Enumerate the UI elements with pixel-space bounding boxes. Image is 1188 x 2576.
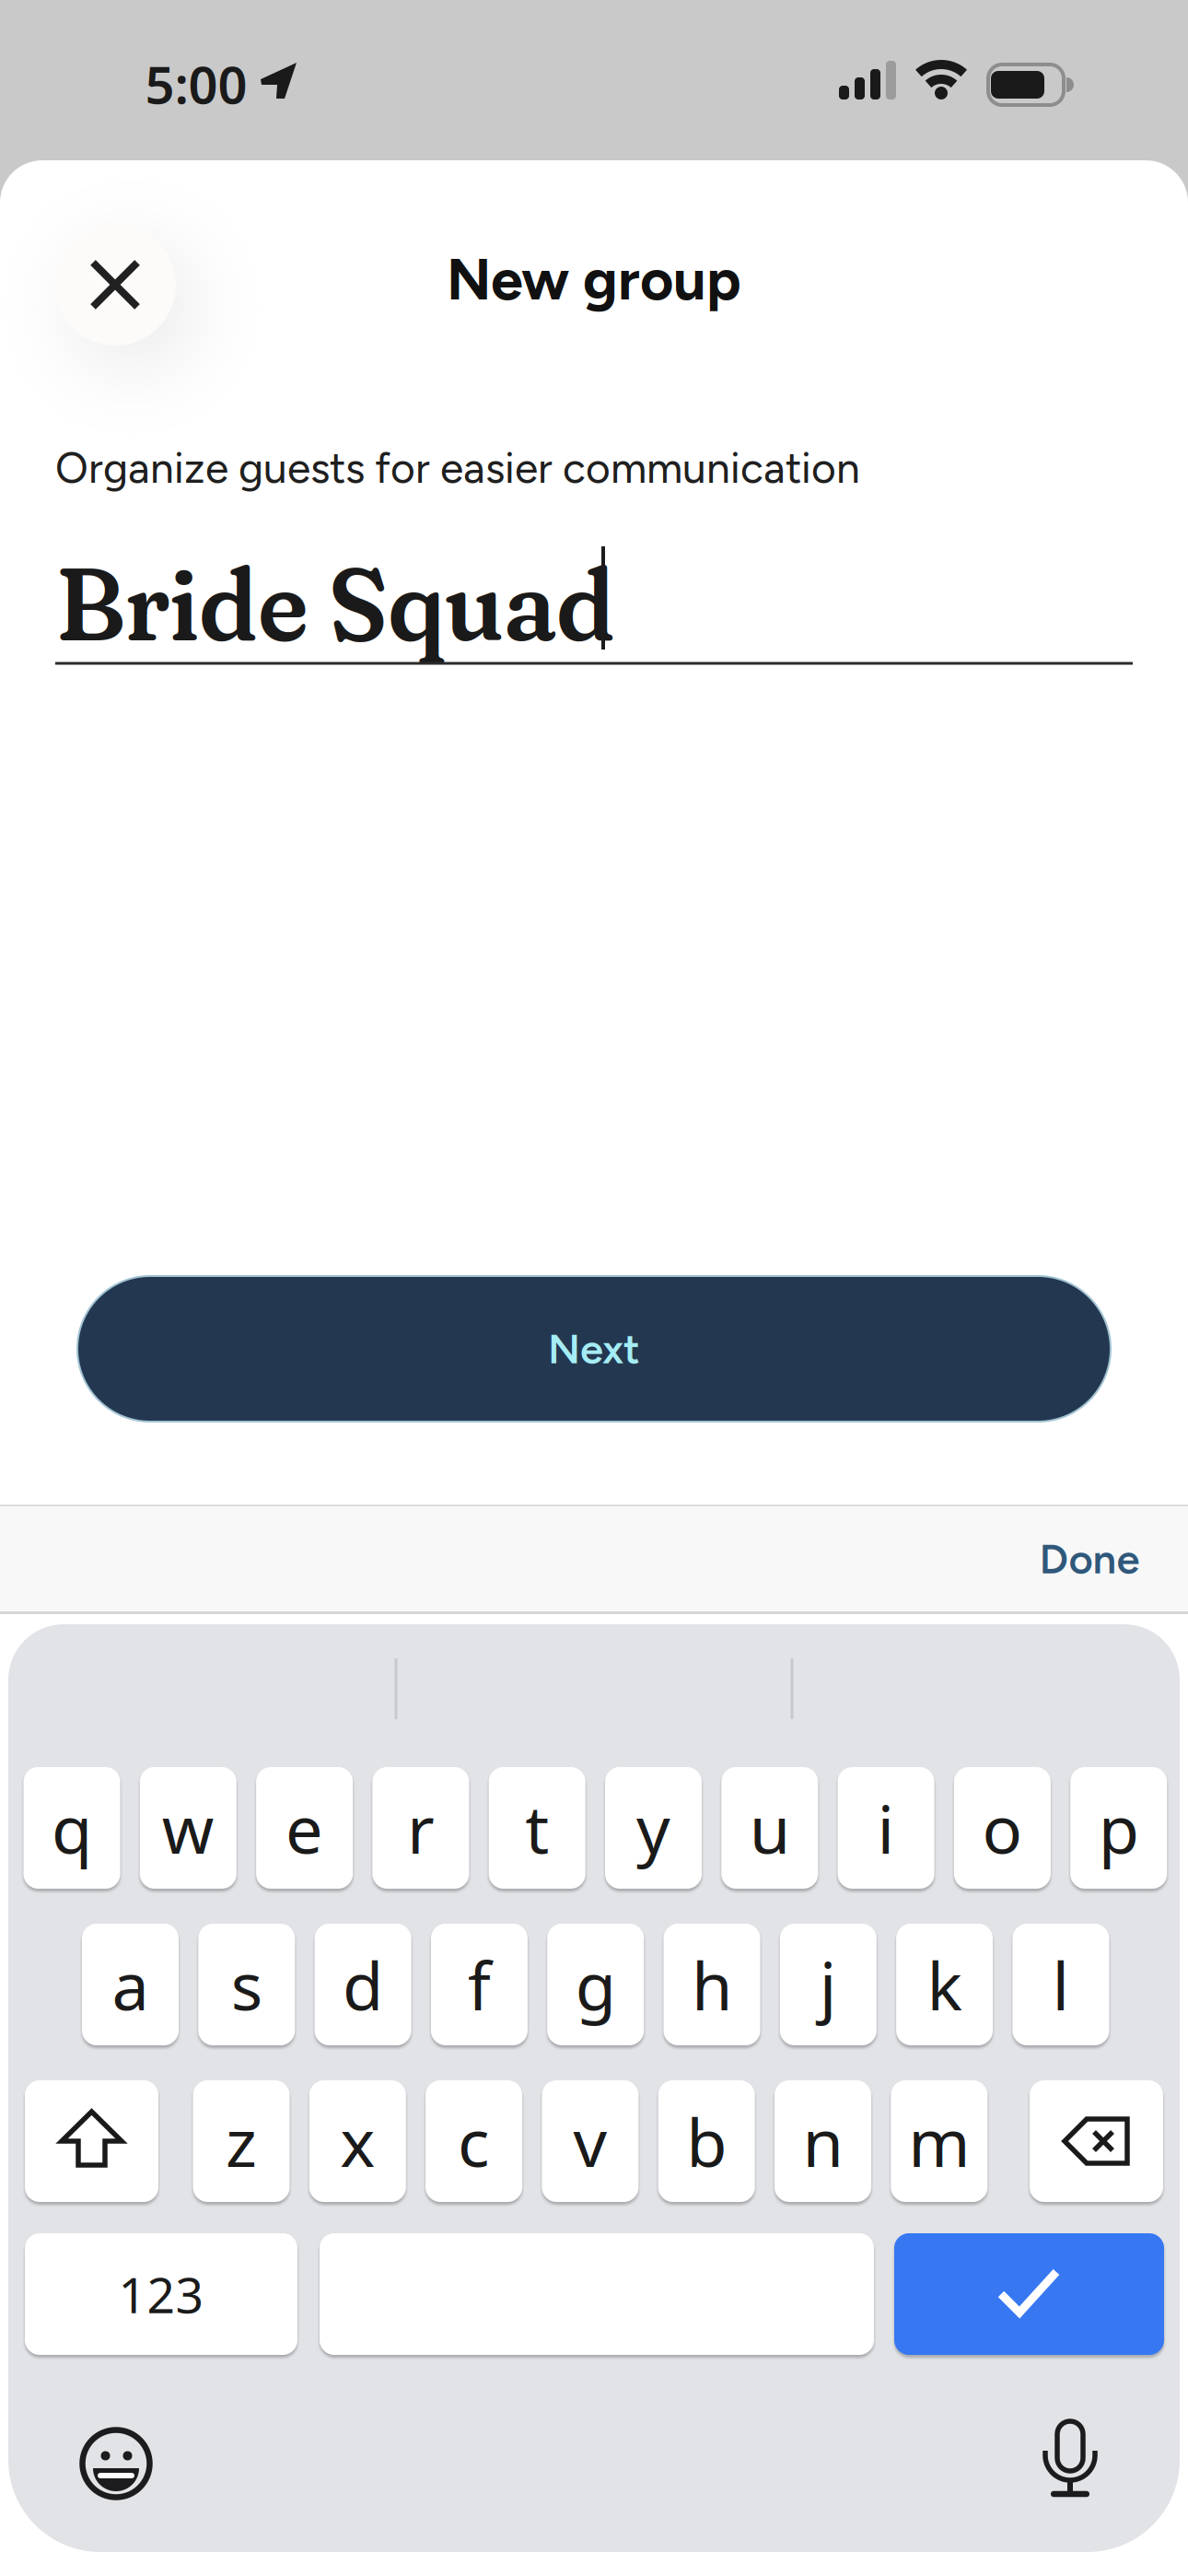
button[interactable]: [320, 2233, 874, 2355]
staticText: y: [636, 1784, 670, 1872]
button[interactable]: o: [954, 1767, 1051, 1889]
button[interactable]: [54, 224, 176, 345]
staticText: Done: [1039, 1534, 1140, 1584]
button[interactable]: y: [605, 1767, 702, 1889]
button[interactable]: j: [780, 1924, 877, 2045]
staticText: s: [231, 1940, 262, 2029]
button[interactable]: n: [775, 2080, 871, 2202]
button[interactable]: u: [721, 1767, 818, 1889]
staticText: r: [407, 1784, 435, 1872]
button[interactable]: z: [193, 2080, 290, 2202]
staticText: q: [52, 1784, 92, 1872]
button[interactable]: q: [23, 1767, 120, 1889]
button[interactable]: [1030, 2080, 1163, 2202]
button[interactable]: [1024, 2414, 1116, 2506]
staticText: m: [908, 2097, 970, 2185]
button[interactable]: [75, 2422, 157, 2505]
button[interactable]: c: [426, 2080, 522, 2202]
button[interactable]: [894, 2233, 1164, 2355]
button[interactable]: f: [431, 1924, 528, 2045]
button[interactable]: a: [82, 1924, 179, 2045]
staticText: 5:00: [145, 50, 247, 118]
staticText: New group: [447, 245, 741, 314]
button[interactable]: d: [315, 1924, 411, 2045]
staticText: w: [162, 1784, 214, 1872]
button[interactable]: p: [1070, 1767, 1167, 1889]
button[interactable]: e: [256, 1767, 353, 1889]
staticText: x: [340, 2097, 375, 2185]
button[interactable]: r: [372, 1767, 469, 1889]
staticText: g: [575, 1940, 616, 2029]
button[interactable]: 123: [25, 2233, 297, 2355]
staticText: Bride Squad: [56, 541, 615, 666]
staticText: z: [226, 2097, 257, 2185]
staticText: v: [573, 2097, 607, 2185]
button[interactable]: v: [542, 2080, 639, 2202]
staticText: 123: [118, 2261, 204, 2327]
button[interactable]: h: [664, 1924, 760, 2045]
button[interactable]: Next: [76, 1275, 1112, 1423]
staticText: c: [458, 2097, 490, 2185]
staticText: o: [982, 1784, 1023, 1872]
staticText: j: [819, 1940, 837, 2029]
button[interactable]: Done: [1021, 1521, 1158, 1597]
staticText: l: [1052, 1940, 1070, 2029]
button[interactable]: [25, 2080, 158, 2202]
button[interactable]: g: [547, 1924, 644, 2045]
staticText: h: [692, 1940, 732, 2029]
staticText: Next: [548, 1324, 640, 1374]
staticText: e: [286, 1784, 323, 1872]
button[interactable]: l: [1012, 1924, 1109, 2045]
button[interactable]: k: [896, 1924, 993, 2045]
button[interactable]: w: [140, 1767, 236, 1889]
button[interactable]: x: [309, 2080, 406, 2202]
staticText: f: [468, 1940, 491, 2029]
button[interactable]: m: [891, 2080, 988, 2202]
button[interactable]: s: [198, 1924, 295, 2045]
button[interactable]: b: [658, 2080, 755, 2202]
button[interactable]: t: [489, 1767, 585, 1889]
staticText: b: [686, 2097, 727, 2185]
staticText: a: [112, 1940, 149, 2029]
staticText: Organize guests for easier communication: [55, 443, 860, 493]
staticText: d: [343, 1940, 383, 2029]
button[interactable]: i: [838, 1767, 934, 1889]
staticText: t: [525, 1784, 549, 1872]
staticText: u: [749, 1784, 790, 1872]
staticText: n: [803, 2097, 843, 2185]
staticText: p: [1098, 1784, 1139, 1872]
staticText: i: [877, 1784, 895, 1872]
staticText: k: [927, 1940, 962, 2029]
